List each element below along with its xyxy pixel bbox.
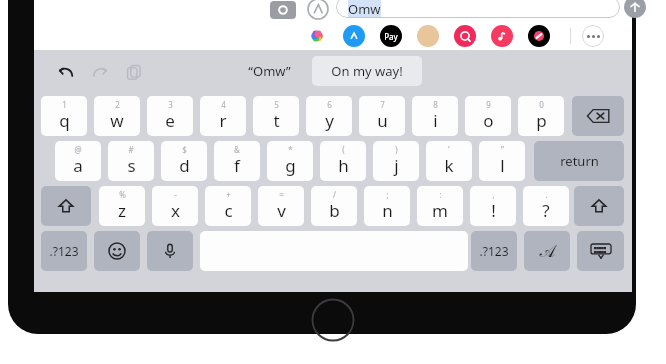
staticText: t (273, 109, 280, 132)
staticText: = (279, 189, 284, 200)
button[interactable]: App 4 (417, 25, 439, 47)
staticText: l (500, 154, 505, 177)
button[interactable]: , (470, 186, 516, 226)
button[interactable]: Omw (336, 0, 620, 18)
staticText: + (226, 189, 231, 200)
staticText: ( (342, 144, 345, 155)
staticText: x (171, 199, 180, 222)
staticText: ’ (448, 144, 450, 155)
button[interactable]: - (152, 186, 198, 226)
button[interactable]: Hide keyboard (577, 231, 624, 271)
staticText: return (560, 152, 599, 170)
staticText: . (545, 189, 548, 200)
staticText: v (277, 199, 286, 222)
button[interactable]: Return (534, 141, 624, 181)
staticText: % (119, 189, 126, 200)
button[interactable]: 4 (200, 96, 246, 136)
button[interactable]: 0 (518, 96, 564, 136)
button[interactable]: More (582, 25, 604, 47)
button[interactable]: 6 (306, 96, 352, 136)
button[interactable]: 5 (253, 96, 299, 136)
button[interactable]: App 6 (491, 25, 513, 47)
staticText: f (234, 154, 240, 177)
staticText: g (285, 154, 296, 177)
staticText: k (444, 154, 454, 177)
button[interactable]: @ (55, 141, 101, 181)
staticText: 6 (327, 99, 332, 110)
staticText: d (179, 154, 190, 177)
staticText: o (483, 109, 494, 132)
button[interactable]: Shift (41, 186, 91, 226)
button[interactable]: + (205, 186, 251, 226)
button[interactable]: 1 (41, 96, 87, 136)
staticText: @ (74, 144, 82, 155)
staticText: - (174, 189, 177, 200)
button[interactable]: * (267, 141, 313, 181)
staticText: .?123 (479, 243, 509, 259)
button[interactable]: Delete (572, 96, 624, 136)
staticText: 5 (274, 99, 279, 110)
staticText: , (492, 189, 495, 200)
staticText: q (59, 109, 70, 132)
staticText: a (73, 154, 83, 177)
staticText: ! (491, 199, 496, 222)
button[interactable]: # (108, 141, 154, 181)
button[interactable]: 7 (359, 96, 405, 136)
button[interactable]: ( (320, 141, 366, 181)
button[interactable]: : (417, 186, 463, 226)
staticText: h (338, 154, 349, 177)
button[interactable]: Emoji (94, 231, 140, 271)
staticText: m (432, 199, 448, 222)
button[interactable]: Paste (120, 58, 148, 86)
button[interactable]: Handwriting (524, 231, 570, 271)
button[interactable]: 3 (147, 96, 193, 136)
button[interactable]: Dictation (147, 231, 193, 271)
staticText: Omw (348, 0, 381, 18)
button[interactable]: % (99, 186, 145, 226)
staticText: * (288, 144, 293, 155)
button[interactable]: App 7 (528, 25, 550, 47)
button[interactable]: / (311, 186, 357, 226)
staticText: 2 (115, 99, 120, 110)
button[interactable]: 8 (412, 96, 458, 136)
button[interactable]: App 1 (306, 25, 328, 47)
button[interactable]: App 2 (343, 25, 365, 47)
button[interactable]: Undo (52, 58, 80, 86)
staticText: 𝒜 (539, 243, 556, 260)
button[interactable]: App 3 (380, 25, 402, 47)
staticText: s (127, 154, 136, 177)
button[interactable]: Shift right (574, 186, 624, 226)
button[interactable]: = (258, 186, 304, 226)
button[interactable]: Redo (86, 58, 114, 86)
staticText: n (382, 199, 393, 222)
staticText: 4 (221, 99, 226, 110)
staticText: .?123 (49, 243, 79, 259)
button[interactable]: ) (373, 141, 419, 181)
button[interactable]: ” (479, 141, 525, 181)
button[interactable]: $ (161, 141, 207, 181)
button[interactable]: & (214, 141, 260, 181)
button[interactable]: Send (624, 0, 646, 18)
staticText: 9 (486, 99, 491, 110)
button[interactable]: Numbers (41, 231, 87, 271)
staticText: e (165, 109, 175, 132)
staticText: # (128, 144, 134, 155)
button[interactable]: “Omw” (209, 58, 329, 84)
button[interactable]: Numbers right (471, 231, 517, 271)
button[interactable]: ’ (426, 141, 472, 181)
button[interactable]: ; (364, 186, 410, 226)
button[interactable]: 2 (94, 96, 140, 136)
button[interactable]: Camera (270, 1, 296, 19)
staticText: & (234, 144, 240, 155)
staticText: 0 (539, 99, 544, 110)
staticText: 3 (168, 99, 173, 110)
button[interactable]: . (523, 186, 569, 226)
staticText: / (333, 189, 336, 200)
staticText: b (329, 199, 340, 222)
staticText: i (433, 109, 438, 132)
button[interactable]: On my way! (312, 56, 422, 86)
button[interactable]: App 5 (454, 25, 476, 47)
button[interactable]: 9 (465, 96, 511, 136)
button[interactable]: App Store (306, 0, 330, 20)
